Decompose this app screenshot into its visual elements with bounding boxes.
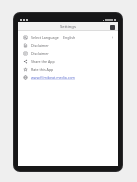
- staticText: Select Language: [31, 35, 59, 40]
- button[interactable]: Share the App: [18, 57, 118, 65]
- button[interactable]: www.filmibeat.media.com: [18, 73, 118, 81]
- button[interactable]: Rate this App: [18, 65, 118, 73]
- staticText: www.filmibeat.media.com: [31, 75, 75, 80]
- staticText: Share the App: [31, 59, 55, 64]
- staticText: Rate this App: [31, 67, 54, 72]
- staticText: Settings: [60, 24, 76, 30]
- staticText: English: [63, 35, 76, 40]
- staticText: Disclaimer: [31, 51, 49, 56]
- button[interactable]: More options: [109, 24, 115, 30]
- button[interactable]: Disclaimer: [18, 41, 118, 49]
- button[interactable]: Select Language: [18, 33, 118, 41]
- button[interactable]: Disclaimer: [18, 49, 118, 57]
- staticText: Disclaimer: [31, 43, 49, 48]
